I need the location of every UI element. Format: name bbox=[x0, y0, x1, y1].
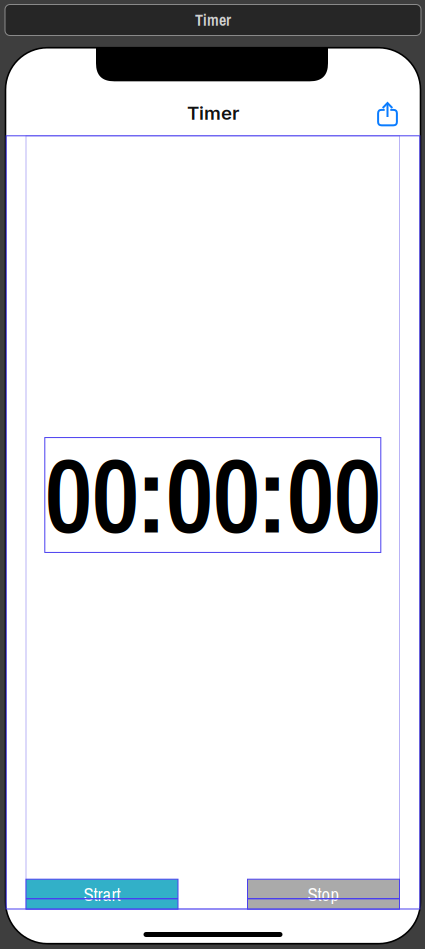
staticText: Strart bbox=[83, 882, 120, 907]
button[interactable]: Strart bbox=[26, 879, 178, 909]
staticText: 00:00:00 bbox=[45, 438, 381, 552]
button[interactable]: Stop bbox=[247, 879, 399, 909]
staticText: Timer bbox=[195, 9, 231, 31]
button[interactable]: Share bbox=[370, 95, 404, 133]
staticText: Timer bbox=[187, 102, 239, 124]
staticText: Stop bbox=[307, 882, 339, 907]
